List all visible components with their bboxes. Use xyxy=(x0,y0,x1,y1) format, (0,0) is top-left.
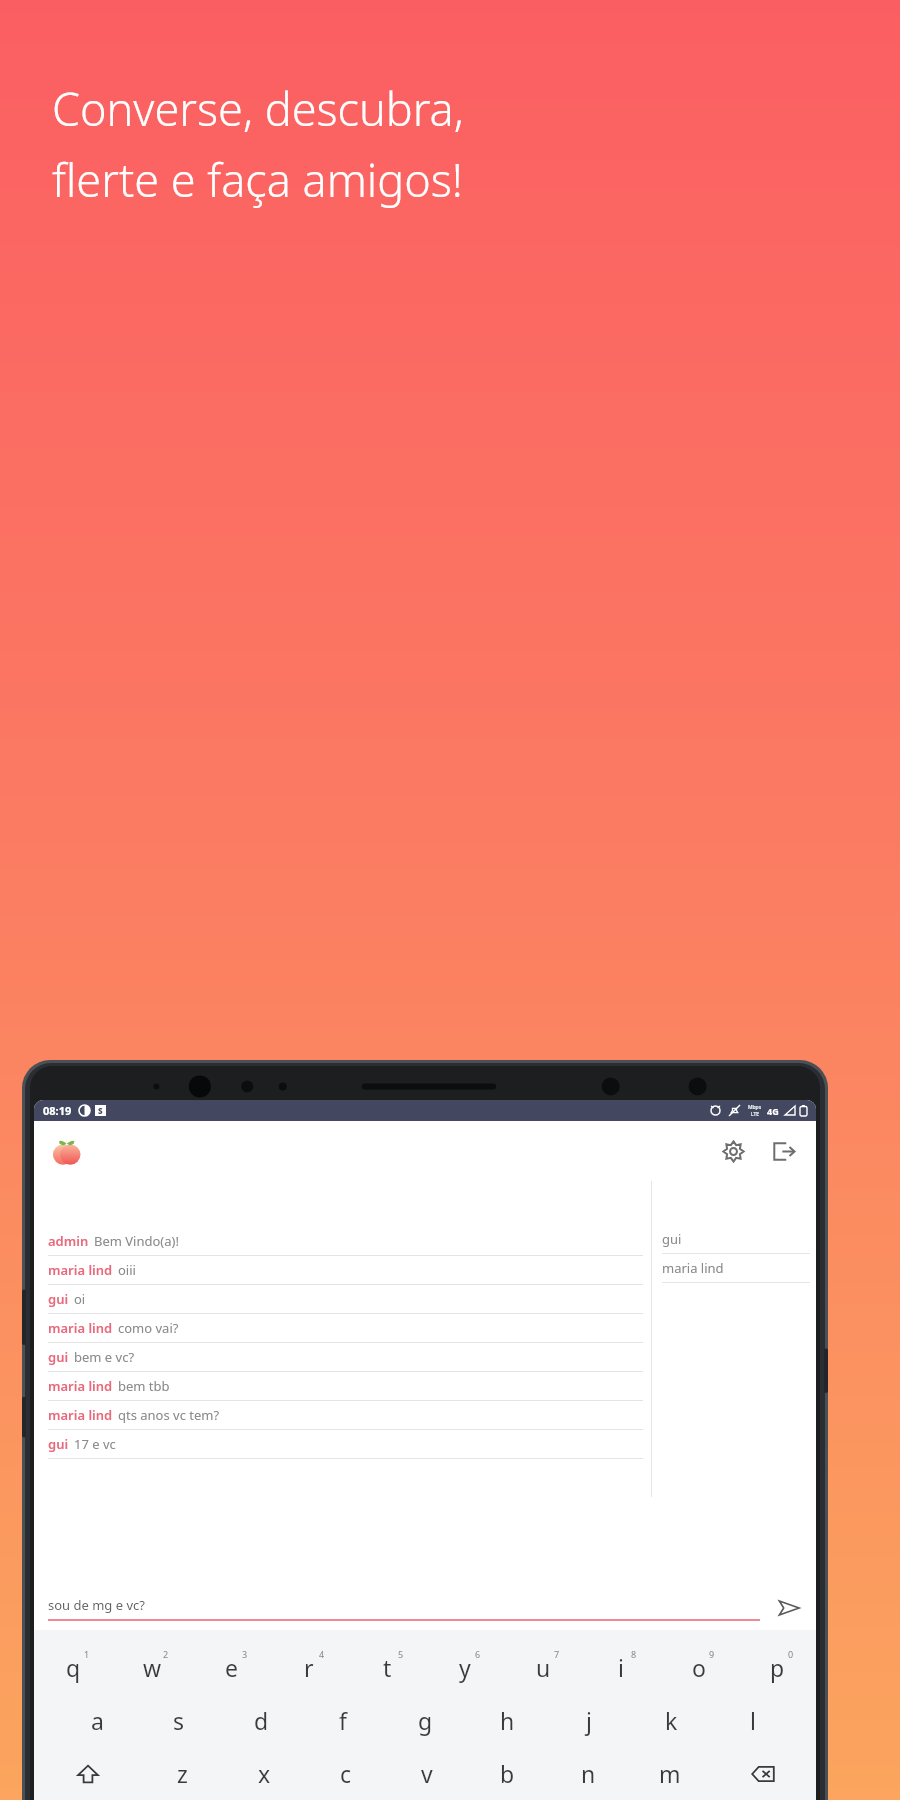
staticText: j xyxy=(586,1705,592,1736)
staticText: Mbps xyxy=(748,1104,762,1111)
staticText: admin xyxy=(48,1232,89,1250)
button[interactable]: maria lind xyxy=(48,1314,643,1342)
button[interactable]: Backspace xyxy=(710,1747,816,1800)
button[interactable]: Settings xyxy=(716,1134,750,1168)
button[interactable]: d xyxy=(220,1694,302,1747)
staticText: i xyxy=(618,1652,624,1683)
staticText: 4 xyxy=(319,1648,325,1660)
staticText: 5 xyxy=(398,1648,404,1660)
staticText: d xyxy=(254,1705,269,1736)
staticText: p xyxy=(770,1652,785,1683)
staticText: bem tbb xyxy=(118,1377,170,1395)
staticText: Converse, descubra, xyxy=(52,78,464,139)
button[interactable]: sou de mg e vc? xyxy=(48,1596,760,1621)
staticText: 6 xyxy=(475,1648,481,1660)
staticText: z xyxy=(177,1758,188,1789)
staticText: s xyxy=(173,1705,185,1736)
staticText: flerte e faça amigos! xyxy=(52,149,463,210)
staticText: 3 xyxy=(242,1648,248,1660)
button[interactable]: c xyxy=(305,1747,386,1800)
staticText: 2 xyxy=(163,1648,169,1660)
button[interactable]: n xyxy=(548,1747,629,1800)
staticText: qts anos vc tem? xyxy=(118,1406,220,1424)
staticText: b xyxy=(500,1758,515,1789)
button[interactable]: gui xyxy=(48,1430,643,1458)
staticText: t xyxy=(383,1652,392,1683)
staticText: k xyxy=(665,1705,678,1736)
button[interactable]: p xyxy=(738,1640,816,1694)
staticText: oiii xyxy=(118,1261,136,1279)
button[interactable]: k xyxy=(630,1694,712,1747)
staticText: gui xyxy=(48,1290,69,1308)
staticText: o xyxy=(692,1652,706,1683)
button[interactable]: gui xyxy=(48,1343,643,1371)
button[interactable]: h xyxy=(466,1694,548,1747)
staticText: 17 e vc xyxy=(74,1435,116,1453)
button[interactable]: a xyxy=(56,1694,138,1747)
button[interactable]: o xyxy=(660,1640,738,1694)
staticText: sou de mg e vc? xyxy=(48,1596,145,1614)
staticText: 1 xyxy=(84,1648,90,1660)
staticText: como vai? xyxy=(118,1319,179,1337)
staticText: gui xyxy=(48,1348,69,1366)
staticText: maria lind xyxy=(48,1377,113,1395)
staticText: w xyxy=(143,1652,162,1683)
staticText: gui xyxy=(662,1230,682,1248)
button[interactable]: m xyxy=(629,1747,710,1800)
staticText: maria lind xyxy=(48,1261,113,1279)
button[interactable]: l xyxy=(712,1694,794,1747)
staticText: y xyxy=(459,1652,471,1683)
staticText: 8 xyxy=(631,1648,637,1660)
button[interactable]: v xyxy=(386,1747,467,1800)
button[interactable]: maria lind xyxy=(48,1401,643,1429)
staticText: oi xyxy=(74,1290,86,1308)
staticText: bem e vc? xyxy=(74,1348,135,1366)
button[interactable]: i xyxy=(582,1640,660,1694)
button[interactable]: u xyxy=(504,1640,582,1694)
staticText: f xyxy=(339,1705,347,1736)
button[interactable]: Shift xyxy=(34,1747,141,1800)
staticText: 4G xyxy=(767,1105,779,1117)
button[interactable] xyxy=(50,1134,84,1168)
button[interactable]: maria lind xyxy=(662,1254,810,1282)
button[interactable]: e xyxy=(192,1640,270,1694)
button[interactable]: q xyxy=(34,1640,113,1694)
button[interactable]: gui xyxy=(48,1285,643,1313)
button[interactable]: j xyxy=(548,1694,630,1747)
button[interactable]: Send xyxy=(774,1593,804,1623)
staticText: n xyxy=(581,1758,596,1789)
staticText: l xyxy=(750,1705,756,1736)
staticText: 0 xyxy=(788,1648,794,1660)
button[interactable]: y xyxy=(426,1640,504,1694)
staticText: v xyxy=(421,1758,433,1789)
staticText: a xyxy=(91,1705,104,1736)
staticText: maria lind xyxy=(48,1319,113,1337)
staticText: h xyxy=(500,1705,515,1736)
staticText: maria lind xyxy=(662,1259,724,1277)
button[interactable]: t xyxy=(348,1640,426,1694)
button[interactable]: w xyxy=(113,1640,192,1694)
button[interactable]: z xyxy=(141,1747,223,1800)
button[interactable]: maria lind xyxy=(48,1256,643,1284)
button[interactable]: s xyxy=(138,1694,220,1747)
button[interactable]: x xyxy=(223,1747,305,1800)
staticText: g xyxy=(418,1705,433,1736)
button[interactable]: Logout xyxy=(766,1134,800,1168)
button[interactable]: f xyxy=(302,1694,384,1747)
staticText: m xyxy=(659,1758,681,1789)
staticText: r xyxy=(304,1652,314,1683)
button[interactable]: b xyxy=(467,1747,548,1800)
button[interactable]: g xyxy=(384,1694,466,1747)
staticText: 08:19 xyxy=(43,1103,72,1118)
staticText: u xyxy=(536,1652,551,1683)
staticText: c xyxy=(340,1758,352,1789)
button[interactable]: admin xyxy=(48,1227,643,1255)
button[interactable]: r xyxy=(270,1640,348,1694)
staticText: LTE xyxy=(751,1111,760,1118)
staticText: q xyxy=(66,1652,81,1683)
staticText: Bem Vindo(a)! xyxy=(94,1232,179,1250)
staticText: x xyxy=(258,1758,271,1789)
button[interactable]: gui xyxy=(662,1225,810,1253)
staticText: maria lind xyxy=(48,1406,113,1424)
button[interactable]: maria lind xyxy=(48,1372,643,1400)
